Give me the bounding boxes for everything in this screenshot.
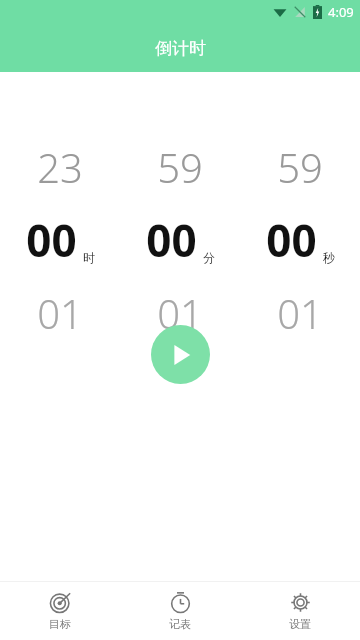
staticText: 59 [277,140,323,194]
staticText: 01 [277,286,323,340]
button[interactable]: Start [151,325,210,384]
button[interactable]: 设置 [240,586,360,637]
staticText: 4:09 [328,3,354,21]
staticText: 记表 [169,617,191,631]
staticText: 秒 [323,250,335,265]
staticText: 时 [83,250,95,265]
staticText: 23 [37,140,83,194]
staticText: 59 [157,140,203,194]
staticText: 设置 [289,617,311,631]
staticText: 分 [203,250,215,265]
staticText: 目标 [49,617,71,631]
staticText: 00 [266,210,317,270]
staticText: 01 [37,286,83,340]
staticText: 倒计时 [155,38,206,59]
staticText: 00 [146,210,197,270]
button[interactable]: 目标 [0,586,120,637]
staticText: 00 [26,210,77,270]
staticText: 01 [157,286,203,340]
button[interactable]: 记表 [120,586,240,637]
